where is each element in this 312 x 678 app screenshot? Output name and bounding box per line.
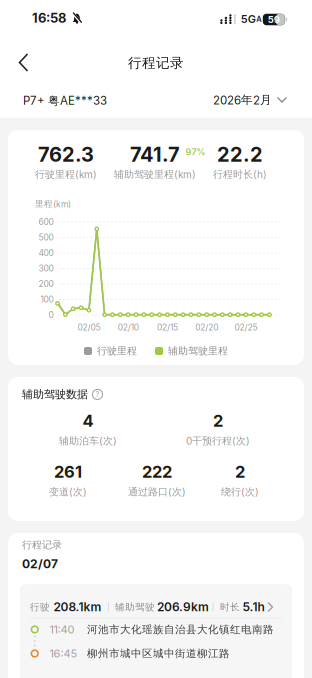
staticText: 16:45	[49, 647, 77, 660]
staticText: 2	[213, 411, 223, 431]
button[interactable]: 2026年2月	[213, 93, 287, 107]
staticText: 4	[82, 411, 93, 431]
staticText: 02/07	[22, 557, 58, 571]
button[interactable]: 行驶	[20, 584, 292, 678]
staticText: 辅助泊车(次)	[59, 435, 117, 447]
staticText: 200	[38, 279, 53, 289]
staticText: 辅助驾驶里程	[168, 345, 228, 357]
button[interactable]: 说明	[92, 389, 103, 400]
staticText: 02/20	[195, 322, 218, 333]
staticText: 59	[268, 14, 280, 25]
staticText: 02/05	[77, 322, 100, 333]
staticText: 600	[38, 217, 53, 227]
staticText: 400	[38, 248, 53, 258]
staticText: 261	[54, 462, 82, 482]
staticText: 11:40	[49, 623, 74, 636]
staticText: 208.1km	[53, 600, 101, 614]
staticText: 97%	[185, 147, 205, 157]
staticText: 02/25	[234, 322, 257, 333]
staticText: 辅助驾驶	[115, 601, 155, 613]
staticText: 绕行(次)	[221, 486, 259, 498]
staticText: 行驶里程	[97, 345, 137, 357]
staticText: 2	[235, 462, 245, 482]
staticText: 100	[40, 294, 53, 305]
staticText: A	[256, 14, 261, 24]
staticText: 22.2	[217, 142, 263, 167]
staticText: 里程(km)	[35, 199, 71, 209]
staticText: P7+ 粤AE***33	[23, 94, 107, 108]
staticText: 741.7	[130, 142, 180, 167]
staticText: 500	[38, 232, 53, 243]
staticText: 河池市大化瑶族自治县大化镇红电南路	[87, 623, 274, 636]
staticText: 222	[142, 462, 172, 482]
staticText: 762.3	[38, 142, 94, 167]
staticText: 行驶	[30, 601, 50, 613]
staticText: 行驶里程(km)	[35, 168, 97, 181]
staticText: 行程记录	[128, 54, 184, 71]
staticText: 2026年2月	[213, 93, 272, 107]
staticText: 206.9km	[157, 600, 209, 614]
staticText: 0	[48, 310, 53, 320]
staticText: 行程时长(h)	[213, 168, 267, 181]
button[interactable]: Back	[12, 51, 36, 75]
staticText: 02/10	[118, 322, 139, 333]
staticText: 辅助驾驶里程(km)	[114, 168, 196, 181]
staticText: 300	[38, 263, 53, 274]
staticText: 变道(次)	[49, 486, 87, 498]
staticText: 通过路口(次)	[128, 486, 186, 498]
staticText: 5.1h	[242, 600, 264, 614]
staticText: 5G	[241, 12, 256, 26]
staticText: 柳州市城中区城中街道柳江路	[87, 647, 230, 660]
staticText: 02/15	[157, 322, 178, 333]
staticText: 时长	[220, 601, 240, 613]
staticText: 辅助驾驶数据	[22, 387, 88, 401]
staticText: 16:58	[32, 10, 66, 26]
staticText: 0干预行程(次)	[186, 435, 250, 447]
staticText: ?	[95, 390, 99, 399]
staticText: 行程记录	[22, 539, 62, 551]
